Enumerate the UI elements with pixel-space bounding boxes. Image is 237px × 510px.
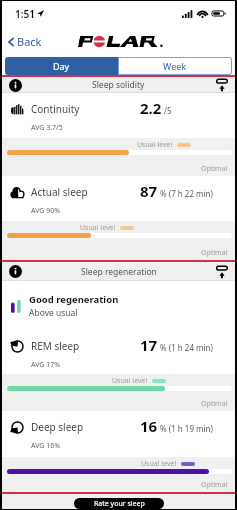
staticText: % (1 h 24 min) [160,342,213,353]
staticText: Continuity [31,102,80,116]
staticText: Usual level [112,376,148,386]
button[interactable]: Rate your sleep [74,498,164,509]
staticText: Back [17,34,42,49]
staticText: AVG 3.7/5 [31,123,63,133]
staticText: Optimal [201,399,228,409]
staticText: 16 [140,416,158,436]
staticText: % (7 h 22 min) [160,188,213,199]
staticText: Good regeneration [29,293,119,306]
staticText: Sleep solidity [92,79,145,91]
button[interactable]: REM sleep [2,330,235,411]
staticText: AVG 17% [31,360,61,370]
staticText: Optimal [201,480,228,490]
button[interactable]: Deep sleep [2,411,235,492]
staticText: Week [163,60,187,72]
button[interactable]: Good regeneration [11,281,235,330]
staticText: 17 [140,335,158,355]
staticText: Sleep regeneration [81,266,157,278]
staticText: Usual level [137,140,173,150]
staticText: 1:51 [15,7,35,21]
staticText: 87 [140,181,158,201]
button[interactable]: Continuity [2,93,235,176]
staticText: Above usual [29,307,78,319]
staticText: REM sleep [31,339,80,353]
button[interactable]: Info [9,79,22,92]
staticText: Day [53,60,70,72]
staticText: 2.2 [140,98,162,118]
staticText: Optimal [201,248,228,258]
button[interactable]: Actual sleep [2,176,235,260]
button[interactable]: Info [9,265,22,278]
staticText: Rate your sleep [94,499,145,509]
button[interactable]: Week [118,57,232,75]
button[interactable]: Day [5,57,118,75]
staticText: Optimal [201,164,228,174]
button[interactable]: Share [216,266,228,278]
staticText: AVG 90% [31,206,61,216]
staticText: Deep sleep [31,420,84,434]
staticText: Actual sleep [31,185,88,199]
staticText: /5 [164,105,172,116]
button[interactable]: Share [216,79,228,91]
staticText: AVG 16% [31,441,61,451]
button[interactable]: Back [5,34,42,49]
staticText: Usual level [80,223,116,233]
staticText: % (1 h 19 min) [160,423,213,434]
staticText: Usual level [141,459,177,469]
